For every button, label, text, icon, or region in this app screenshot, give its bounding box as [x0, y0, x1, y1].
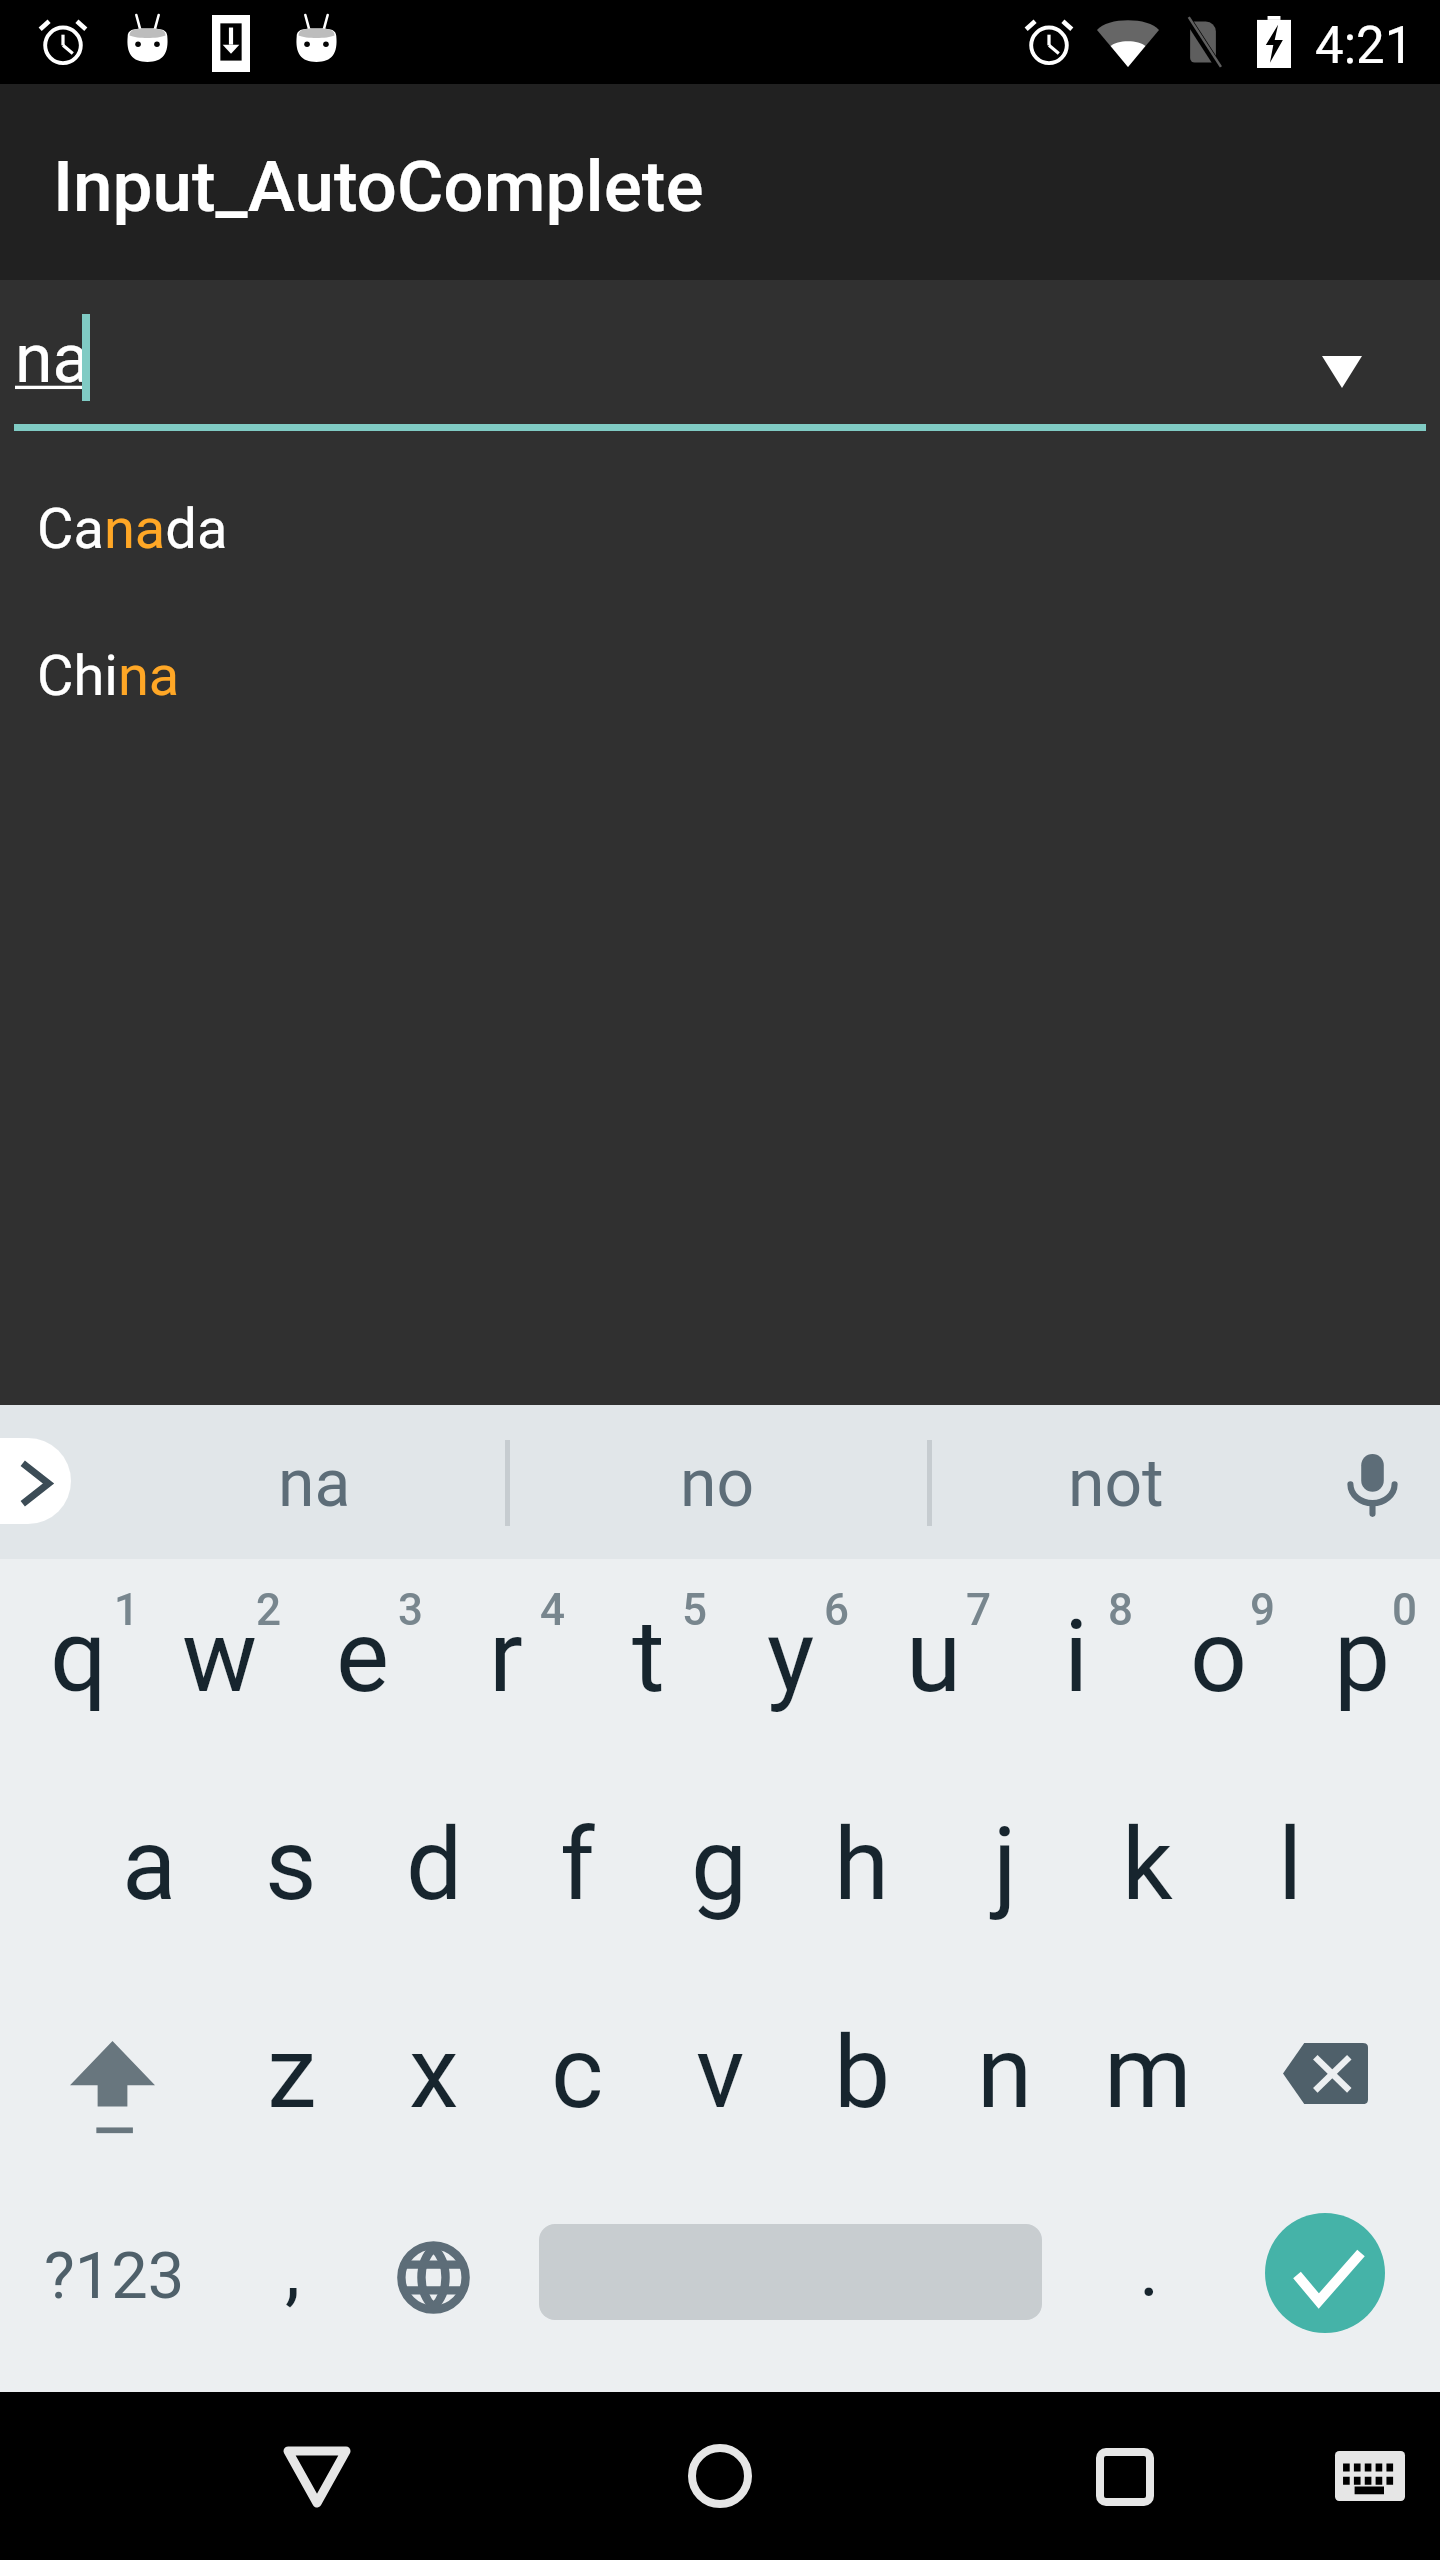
button[interactable]: s — [216, 1767, 360, 1975]
staticText: k — [1122, 1806, 1173, 1923]
button[interactable]: a — [72, 1767, 216, 1975]
button[interactable]: na — [110, 1405, 518, 1559]
button[interactable]: na — [0, 280, 1440, 425]
staticText: y — [767, 1598, 815, 1715]
button[interactable]: v — [648, 1975, 792, 2183]
button[interactable]: z — [216, 1975, 360, 2183]
button[interactable]: n — [936, 1975, 1080, 2183]
staticText: no — [680, 1445, 755, 1522]
button[interactable]: Canada — [0, 478, 1440, 625]
staticText: t — [632, 1598, 665, 1715]
staticText: China — [37, 643, 180, 709]
button[interactable]: no — [518, 1405, 916, 1559]
button[interactable]: i — [1008, 1559, 1152, 1767]
staticText: d — [406, 1806, 463, 1923]
button[interactable]: ?123 — [0, 2183, 216, 2392]
staticText: not — [1068, 1445, 1164, 1522]
button[interactable]: e — [288, 1559, 432, 1767]
staticText: c — [551, 2014, 604, 2131]
button[interactable]: t — [576, 1559, 720, 1767]
staticText: 6 — [824, 1584, 850, 1636]
staticText: w — [182, 1598, 258, 1715]
button[interactable]: Hide keyboard — [1300, 2392, 1440, 2560]
staticText: 5 — [682, 1584, 708, 1636]
staticText: e — [336, 1598, 390, 1715]
staticText: o — [1190, 1598, 1248, 1715]
button[interactable] — [504, 2183, 1080, 2392]
button[interactable]: h — [792, 1767, 936, 1975]
button[interactable]: x — [360, 1975, 504, 2183]
staticText: na — [278, 1445, 351, 1522]
button[interactable]: f — [504, 1767, 648, 1975]
staticText: b — [834, 2014, 891, 2131]
staticText: 7 — [966, 1584, 992, 1636]
button[interactable]: u — [864, 1559, 1008, 1767]
staticText: z — [267, 2014, 317, 2131]
button[interactable]: j — [936, 1767, 1080, 1975]
staticText: q — [50, 1598, 107, 1715]
button[interactable]: k — [1080, 1767, 1224, 1975]
staticText: 9 — [1250, 1584, 1276, 1636]
button[interactable]: o — [1152, 1559, 1296, 1767]
staticText: r — [489, 1598, 523, 1715]
staticText: 0 — [1392, 1584, 1418, 1636]
button[interactable]: m — [1080, 1975, 1224, 2183]
staticText: n — [977, 2014, 1033, 2131]
staticText: x — [409, 2014, 459, 2131]
button[interactable]: Voice input — [1326, 1437, 1416, 1527]
button[interactable]: Recent apps — [1046, 2392, 1206, 2560]
staticText: a — [122, 1806, 177, 1923]
button[interactable]: Delete — [1224, 1975, 1440, 2183]
staticText: 4 — [540, 1584, 566, 1636]
button[interactable]: g — [648, 1767, 792, 1975]
staticText: s — [265, 1806, 317, 1923]
button[interactable]: q — [0, 1559, 144, 1767]
button[interactable]: Show dropdown — [1322, 356, 1362, 388]
staticText: 3 — [398, 1584, 424, 1636]
staticText: . — [1139, 2225, 1160, 2315]
button[interactable]: China — [0, 625, 1440, 772]
staticText: 1 — [114, 1584, 140, 1636]
staticText: v — [696, 2014, 745, 2131]
button[interactable]: Change language — [360, 2183, 504, 2392]
staticText: 4:21 — [1315, 16, 1414, 76]
button[interactable]: c — [504, 1975, 648, 2183]
staticText: g — [691, 1806, 748, 1923]
button[interactable]: r — [432, 1559, 576, 1767]
staticText: 8 — [1108, 1584, 1134, 1636]
staticText: j — [993, 1806, 1017, 1923]
button[interactable]: w — [144, 1559, 288, 1767]
staticText: 2 — [256, 1584, 282, 1636]
staticText: m — [1104, 2014, 1192, 2131]
button[interactable]: not — [916, 1405, 1316, 1559]
button[interactable]: Expand toolbar — [0, 1438, 71, 1524]
staticText: u — [906, 1598, 962, 1715]
staticText: h — [834, 1806, 890, 1923]
staticText: l — [1278, 1806, 1303, 1923]
staticText: , — [285, 2225, 301, 2315]
button[interactable]: Back — [240, 2392, 400, 2560]
button[interactable]: Home — [640, 2392, 800, 2560]
staticText: Canada — [37, 496, 228, 562]
staticText: f — [560, 1806, 595, 1923]
button[interactable]: p — [1296, 1559, 1440, 1767]
staticText: p — [1334, 1598, 1391, 1715]
button[interactable]: Shift — [0, 1975, 216, 2183]
staticText: Input_AutoComplete — [53, 145, 704, 228]
button[interactable]: . — [1080, 2183, 1224, 2392]
button[interactable]: b — [792, 1975, 936, 2183]
button[interactable]: Enter — [1224, 2183, 1440, 2392]
staticText: ?123 — [44, 2238, 185, 2314]
button[interactable]: , — [216, 2183, 360, 2392]
button[interactable]: y — [720, 1559, 864, 1767]
button[interactable]: l — [1224, 1767, 1368, 1975]
staticText: na — [15, 319, 90, 399]
button[interactable]: d — [360, 1767, 504, 1975]
staticText: i — [1064, 1598, 1089, 1715]
